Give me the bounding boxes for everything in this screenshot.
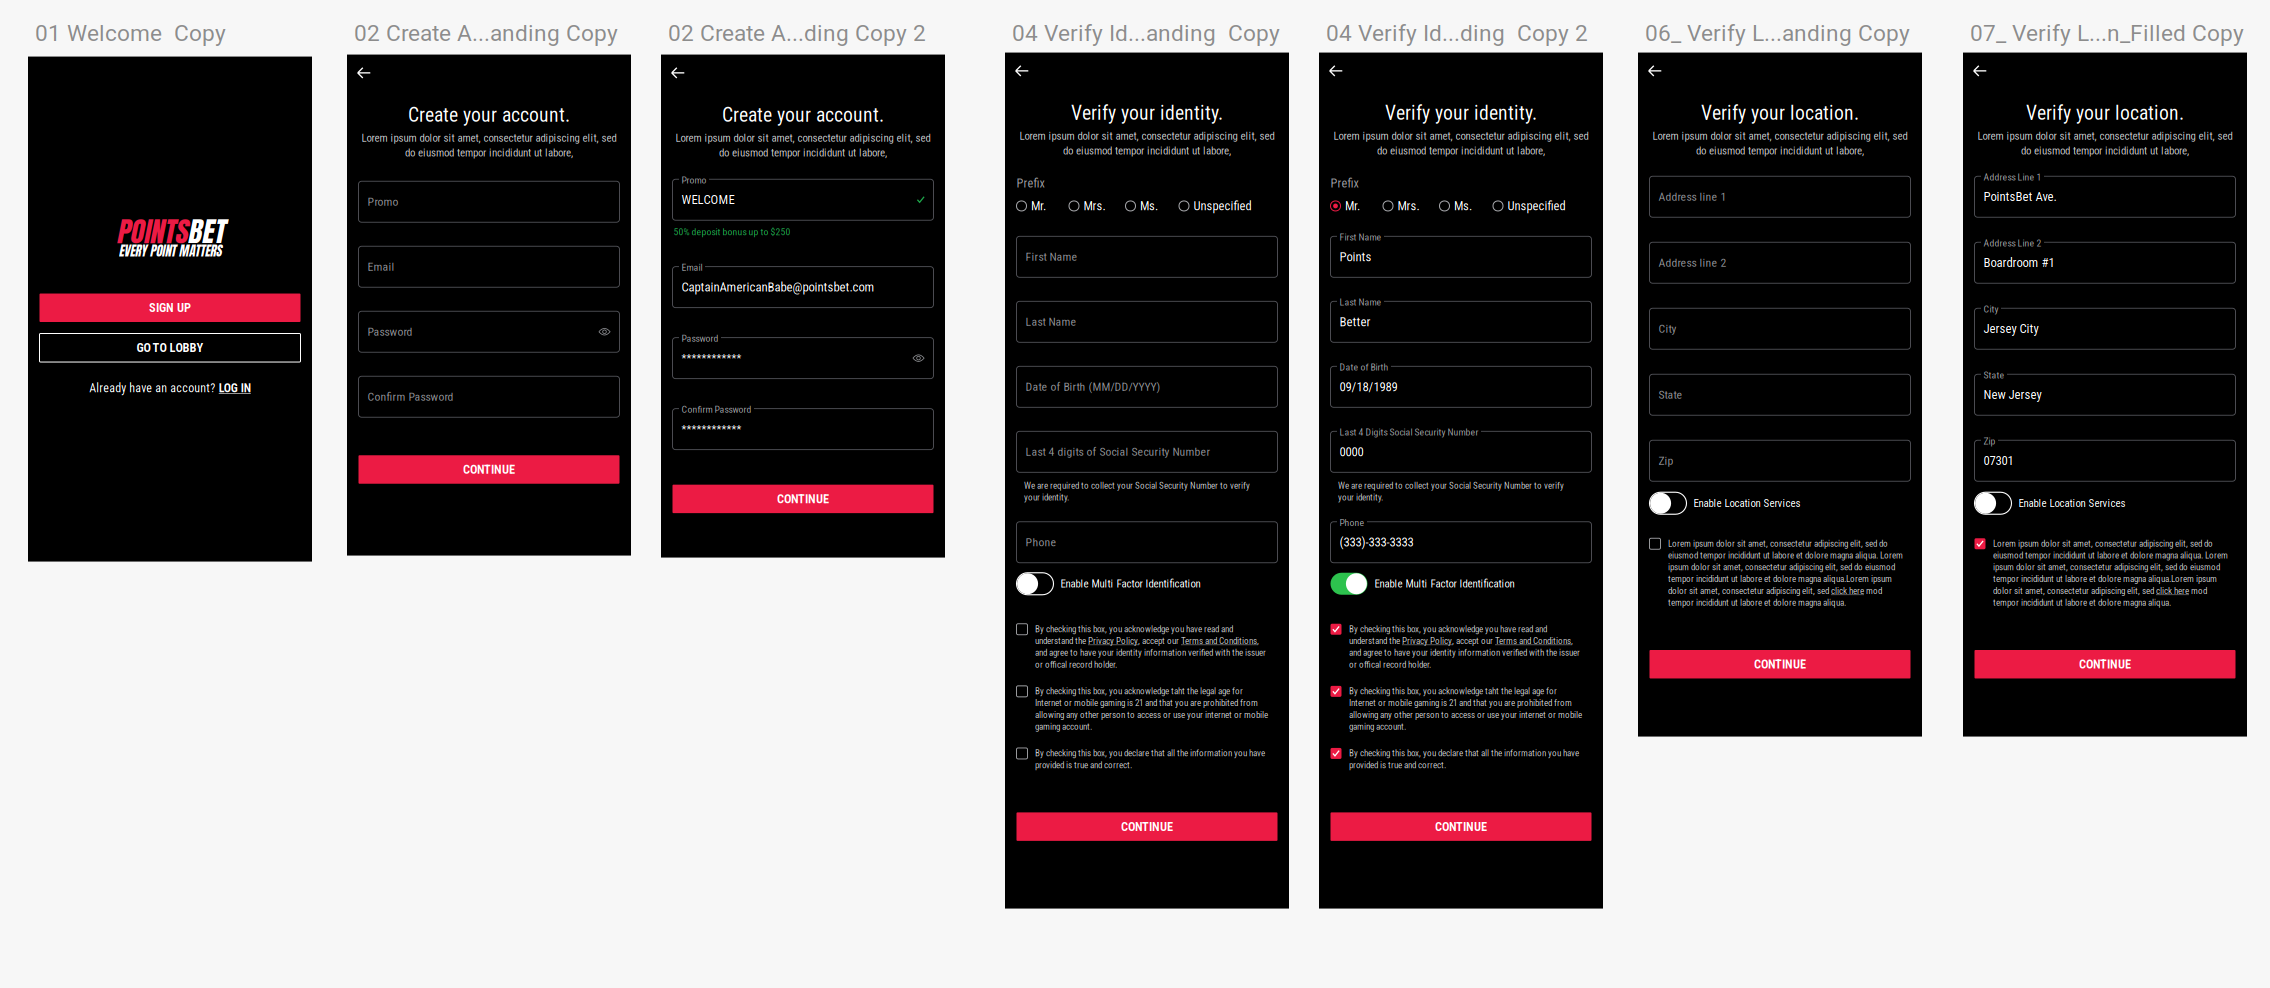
button[interactable]: CONTINUE [358, 455, 619, 484]
staticText: By checking this box, you acknowledge ta… [1035, 686, 1243, 696]
staticText: your identity. [1024, 492, 1069, 503]
staticText: CONTINUE [1754, 657, 1806, 671]
staticText: Promo [681, 174, 706, 186]
staticText: City [1983, 303, 1998, 315]
staticText: Unspecified [1193, 199, 1251, 213]
staticText: 07_ Verify L...n_Filled Copy [1970, 20, 2244, 47]
button[interactable]: Enable Multi Factor Identification [1330, 573, 1591, 595]
staticText: 04 Verify Id...anding Copy [1012, 20, 1280, 47]
button[interactable]: CONTINUE [1649, 650, 1910, 678]
staticText: Confirm Password [367, 390, 453, 404]
button[interactable]: Back [352, 61, 376, 86]
staticText: Lorem ipsum dolor sit amet, consectetur … [1652, 130, 1907, 142]
staticText: Prefix [1330, 176, 1358, 191]
button[interactable]: Mr. [1016, 199, 1046, 213]
staticText: Verify your identity. [1071, 102, 1223, 125]
button[interactable]: Lorem ipsum dolor sit amet, consectetur … [1974, 538, 2235, 608]
staticText: 06_ Verify L...anding Copy [1645, 20, 1910, 47]
button[interactable]: Back [666, 61, 690, 86]
staticText: Lorem ipsum dolor sit amet, consectetur … [1977, 130, 2232, 142]
button[interactable]: Lorem ipsum dolor sit amet, consectetur … [1649, 538, 1910, 608]
staticText: Verify your location. [1701, 102, 1859, 125]
staticText: Last 4 digits of Social Security Number [1025, 445, 1210, 459]
staticText: LOG IN [219, 381, 251, 395]
staticText: or offical record holder. [1035, 659, 1117, 670]
button[interactable]: By checking this box, you acknowledge ta… [1016, 686, 1277, 732]
staticText: Last Name [1025, 315, 1076, 329]
staticText: Boardroom #1 [1983, 255, 2054, 270]
button[interactable]: Ms. [1125, 199, 1158, 213]
staticText: GO TO LOBBY [136, 340, 203, 355]
staticText: dolor sit amet, consectetur adipiscing e… [1668, 585, 1882, 596]
button[interactable]: Already have an account? [89, 381, 251, 395]
staticText: understand the Privacy Policy, accept ou… [1349, 636, 1573, 646]
staticText: Internet or mobile gaming is 21 and that… [1349, 698, 1572, 708]
staticText: Verify your identity. [1385, 102, 1537, 125]
staticText: Mrs. [1397, 199, 1419, 213]
button[interactable]: Enable Multi Factor Identification [1016, 573, 1277, 595]
staticText: CONTINUE [1435, 819, 1487, 834]
staticText: Enable Location Services [1693, 497, 1800, 510]
button[interactable]: Back [1643, 59, 1667, 84]
button[interactable]: By checking this box, you acknowledge ta… [1330, 686, 1591, 732]
staticText: dolor sit amet, consectetur adipiscing e… [1993, 585, 2207, 596]
button[interactable]: CONTINUE [672, 485, 933, 513]
staticText: Enable Multi Factor Identification [1374, 577, 1514, 590]
button[interactable]: By checking this box, you acknowledge yo… [1016, 624, 1277, 670]
button[interactable]: Unspecified [1493, 199, 1565, 213]
staticText: First Name [1025, 250, 1077, 264]
staticText: Confirm Password [681, 404, 751, 415]
button[interactable]: Mr. [1330, 199, 1360, 213]
button[interactable]: By checking this box, you declare that a… [1016, 748, 1277, 770]
staticText: By checking this box, you acknowledge yo… [1035, 624, 1233, 634]
button[interactable]: Ms. [1439, 199, 1472, 213]
button[interactable]: By checking this box, you acknowledge yo… [1330, 624, 1591, 670]
staticText: Address line 2 [1658, 256, 1726, 270]
staticText: and agree to have your identity informat… [1035, 647, 1266, 658]
staticText: Lorem ipsum dolor sit amet, consectetur … [1019, 130, 1274, 142]
staticText: tempor incididunt ut labore et dolore ma… [1993, 597, 2171, 608]
staticText: Phone [1339, 517, 1364, 528]
staticText: 04 Verify Id...ding Copy 2 [1326, 20, 1588, 47]
staticText: Email [681, 262, 702, 273]
staticText: Zip [1983, 435, 1995, 447]
staticText: By checking this box, you acknowledge yo… [1349, 624, 1547, 634]
staticText: do eiusmod tempor incididunt ut labore, [1063, 144, 1231, 157]
staticText: Jersey City [1983, 321, 2038, 336]
button[interactable]: CONTINUE [1330, 812, 1591, 841]
staticText: tempor incididunt ut labore et dolore ma… [1993, 574, 2217, 584]
staticText: eiusmod tempor incididunt ut labore et d… [1993, 550, 2228, 561]
staticText: ipsum dolor sit amet, consectetur adipis… [1668, 562, 1895, 572]
button[interactable]: Back [1010, 59, 1034, 84]
staticText: By checking this box, you declare that a… [1035, 748, 1265, 758]
staticText: Lorem ipsum dolor sit amet, consectetur … [675, 132, 930, 144]
staticText: Date of Birth [1339, 361, 1388, 373]
staticText: City [1658, 322, 1676, 336]
button[interactable]: CONTINUE [1974, 650, 2235, 678]
staticText: Already have an account? [89, 381, 215, 395]
button[interactable]: CONTINUE [1016, 812, 1277, 841]
staticText: or offical record holder. [1349, 659, 1431, 670]
staticText: Points [1339, 249, 1371, 264]
button[interactable]: GO TO LOBBY [39, 333, 300, 362]
button[interactable]: Back [1324, 59, 1348, 84]
button[interactable]: SIGN UP [39, 293, 300, 322]
button[interactable]: Enable Location Services [1649, 492, 1910, 514]
button[interactable]: Mrs. [1383, 199, 1419, 213]
staticText: CaptainAmericanBabe@pointsbet.com [681, 280, 874, 295]
button[interactable]: Back [1968, 59, 1992, 84]
staticText: eiusmod tempor incididunt ut labore et d… [1668, 550, 1903, 561]
button[interactable]: Mrs. [1069, 199, 1105, 213]
staticText: Verify your location. [2026, 102, 2184, 125]
staticText: understand the Privacy Policy, accept ou… [1035, 636, 1259, 646]
staticText: Address line 1 [1658, 190, 1726, 204]
staticText: tempor incididunt ut labore et dolore ma… [1668, 574, 1892, 584]
staticText: Zip [1658, 454, 1673, 468]
button[interactable]: Enable Location Services [1974, 492, 2235, 514]
staticText: Lorem ipsum dolor sit amet, consectetur … [361, 132, 616, 144]
button[interactable]: Unspecified [1179, 199, 1251, 213]
staticText: ipsum dolor sit amet, consectetur adipis… [1993, 562, 2220, 572]
staticText: gaming account. [1349, 721, 1406, 732]
staticText: ************ [681, 423, 741, 436]
button[interactable]: By checking this box, you declare that a… [1330, 748, 1591, 770]
